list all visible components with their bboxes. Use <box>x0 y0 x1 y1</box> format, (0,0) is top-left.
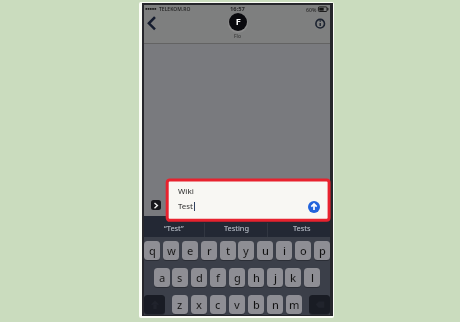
staticText: x <box>196 297 202 312</box>
button[interactable]: n <box>267 295 283 314</box>
button[interactable]: f <box>210 268 226 287</box>
staticText: h <box>253 270 260 285</box>
staticText: Test <box>178 201 194 212</box>
staticText: “Test” <box>164 223 184 233</box>
button[interactable]: e <box>182 241 198 260</box>
button[interactable]: h <box>248 268 264 287</box>
staticText: w <box>167 243 176 258</box>
button[interactable]: r <box>201 241 217 260</box>
staticText: f <box>216 270 220 285</box>
button[interactable]: x <box>191 295 207 314</box>
button[interactable] <box>144 295 165 314</box>
staticText: i <box>283 243 286 258</box>
staticText: o <box>300 243 307 258</box>
staticText: 16:57 <box>230 5 245 13</box>
button[interactable]: m <box>286 295 302 314</box>
staticText: j <box>274 270 277 285</box>
staticText: q <box>149 243 156 258</box>
staticText: l <box>311 270 314 285</box>
staticText: c <box>215 297 221 312</box>
button[interactable]: z <box>172 295 188 314</box>
button[interactable]: F <box>229 13 247 31</box>
button[interactable]: p <box>314 241 330 260</box>
button[interactable]: s <box>172 268 188 287</box>
button[interactable]: o <box>295 241 311 260</box>
button[interactable]: b <box>248 295 264 314</box>
staticText: Wiki <box>178 186 194 197</box>
button[interactable] <box>308 201 320 213</box>
staticText: b <box>253 297 260 312</box>
staticText: u <box>262 243 269 258</box>
staticText: n <box>272 297 279 312</box>
button[interactable]: t <box>220 241 236 260</box>
staticText: s <box>177 270 183 285</box>
button[interactable]: j <box>267 268 283 287</box>
button[interactable]: v <box>229 295 245 314</box>
button[interactable]: u <box>257 241 273 260</box>
staticText: v <box>234 297 240 312</box>
button[interactable]: q <box>144 241 160 260</box>
staticText: k <box>290 270 297 285</box>
button[interactable] <box>151 200 161 210</box>
button[interactable]: l <box>304 268 320 287</box>
button[interactable]: d <box>191 268 207 287</box>
button[interactable] <box>145 14 159 32</box>
button[interactable] <box>309 295 330 314</box>
staticText: z <box>177 297 183 312</box>
button[interactable]: a <box>154 268 170 287</box>
button[interactable]: Tests <box>272 220 332 235</box>
staticText: g <box>234 270 241 285</box>
button[interactable]: w <box>163 241 179 260</box>
staticText: 60% <box>306 6 317 13</box>
staticText: Tests <box>293 223 311 233</box>
button[interactable]: g <box>229 268 245 287</box>
staticText: m <box>289 297 300 312</box>
staticText: d <box>196 270 203 285</box>
button[interactable]: y <box>238 241 254 260</box>
staticText: t <box>226 243 231 258</box>
staticText: y <box>243 243 249 258</box>
button[interactable]: c <box>210 295 226 314</box>
staticText: p <box>319 243 326 258</box>
staticText: e <box>187 243 194 258</box>
button[interactable]: Testing <box>206 220 266 235</box>
button[interactable]: i <box>276 241 292 260</box>
button[interactable]: k <box>285 268 301 287</box>
staticText: a <box>159 270 166 285</box>
button[interactable] <box>313 17 328 32</box>
staticText: Flo <box>234 33 241 40</box>
button[interactable]: “Test” <box>144 220 204 235</box>
staticText: r <box>207 243 212 258</box>
staticText: TELEKOM.RO <box>159 6 191 13</box>
staticText: Testing <box>224 223 249 233</box>
staticText: F <box>236 16 241 28</box>
